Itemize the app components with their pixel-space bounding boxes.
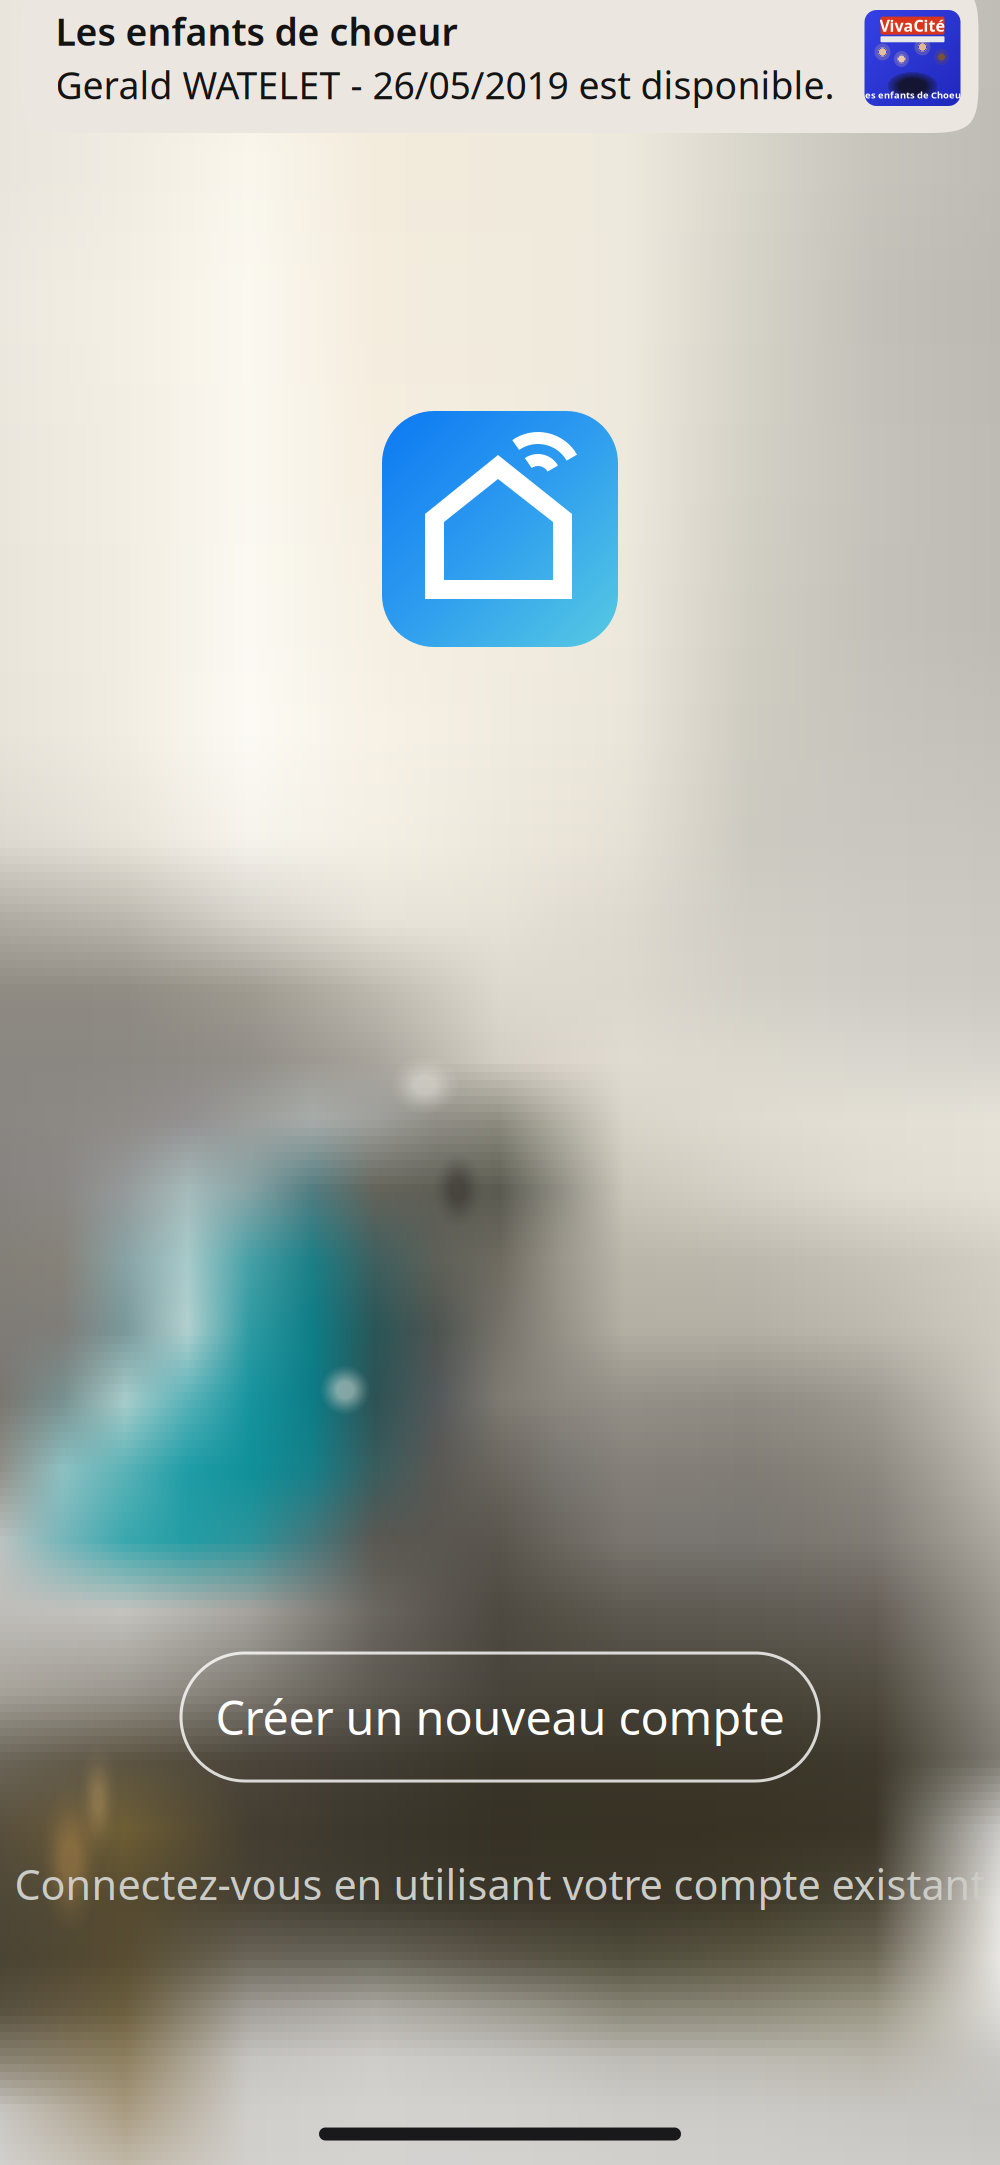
staticText: Créer un nouveau compte	[215, 1686, 784, 1748]
button[interactable]: Les enfants de choeur	[21, 0, 978, 133]
staticText: Gerald WATELET - 26/05/2019 est disponib…	[55, 60, 834, 110]
staticText: Les enfants de Choeur	[860, 89, 965, 101]
button[interactable]: Connectez-vous en utilisant votre compte…	[0, 1849, 1000, 1919]
staticText: Les enfants de choeur	[55, 6, 457, 56]
staticText: VivaCité	[879, 15, 945, 36]
staticText: Connectez-vous en utilisant votre compte…	[14, 1857, 985, 1911]
button[interactable]: Créer un nouveau compte	[181, 1653, 819, 1781]
